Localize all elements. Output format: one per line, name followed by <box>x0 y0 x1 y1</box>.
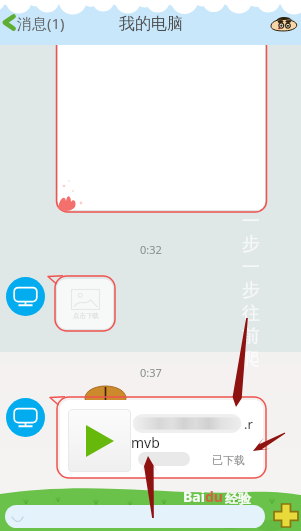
staticText: 经验 <box>225 490 251 506</box>
button[interactable]: Back <box>0 0 71 45</box>
staticText: Bai <box>183 487 205 506</box>
button[interactable]: Avatar <box>6 398 45 437</box>
button[interactable]: Avatar <box>6 277 45 316</box>
staticText: 0:32 <box>140 242 162 257</box>
staticText: 往 <box>242 302 260 325</box>
staticText: 我的电脑 <box>119 14 183 34</box>
staticText: 步 <box>242 233 260 256</box>
staticText: 前 <box>242 325 260 348</box>
staticText: du <box>205 487 223 506</box>
staticText: mvb <box>131 433 160 452</box>
staticText: 已下载 <box>212 453 245 467</box>
staticText: 步 <box>242 279 260 302</box>
button[interactable]: Add <box>272 504 299 527</box>
button[interactable]: Profile <box>266 6 300 40</box>
staticText: .r <box>244 415 253 433</box>
staticText: 消息(1) <box>17 13 65 33</box>
button[interactable] <box>5 505 265 528</box>
staticText: 爬 <box>242 348 260 371</box>
staticText: 点击下载 <box>73 312 99 320</box>
staticText: 0:37 <box>140 365 162 380</box>
button[interactable]: 点击下载 <box>57 279 113 329</box>
button[interactable]: .r <box>60 400 263 478</box>
other: Back <box>0 14 17 31</box>
staticText: 一 <box>242 256 260 279</box>
staticText: 一 <box>242 210 260 233</box>
